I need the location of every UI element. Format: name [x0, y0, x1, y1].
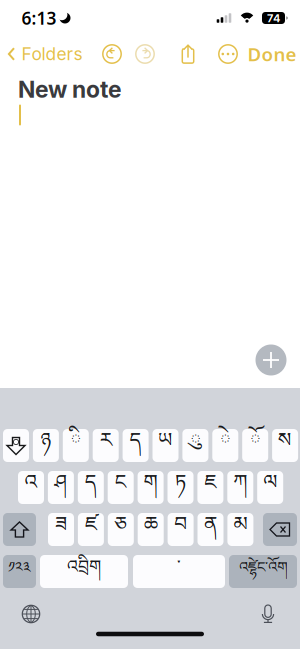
staticText: ཤ	[54, 459, 67, 516]
staticText: ོ	[250, 417, 261, 474]
button[interactable]: མ	[227, 513, 253, 546]
staticText: ེ	[220, 417, 231, 474]
staticText: Folders	[21, 43, 82, 64]
button[interactable]: Sticker	[3, 429, 29, 462]
staticText: ཟ	[55, 501, 67, 558]
staticText: ཛ	[85, 501, 97, 558]
button[interactable]: ཟ	[48, 513, 74, 546]
staticText: ཇ	[204, 459, 216, 516]
button[interactable]: Share	[179, 43, 197, 65]
staticText: ཡ	[158, 417, 173, 474]
button[interactable]: ཛ	[78, 513, 104, 546]
staticText: འཛྷེང་འོག	[239, 551, 287, 592]
button[interactable]: ལ	[257, 471, 283, 504]
button[interactable]: Folders	[14, 41, 76, 67]
button[interactable]: ན	[197, 513, 223, 546]
staticText: 74	[267, 12, 280, 25]
button[interactable]: ི	[63, 429, 89, 462]
button[interactable]: Delete	[263, 513, 297, 546]
button[interactable]: ཉ	[33, 429, 59, 462]
staticText: ུ	[190, 417, 201, 474]
staticText: New note	[18, 76, 122, 103]
button[interactable]: Dictate	[260, 604, 275, 624]
staticText: ད	[130, 417, 142, 474]
button[interactable]: བ	[168, 513, 194, 546]
staticText: ད	[85, 459, 97, 516]
button[interactable]: ག	[138, 471, 164, 504]
button[interactable]: ༡༢༣	[3, 555, 36, 588]
button[interactable]: འབྲིག	[40, 555, 128, 588]
staticText: ཀ	[233, 459, 247, 516]
staticText: ར	[100, 417, 112, 474]
staticText: འ	[24, 459, 37, 516]
button[interactable]: འཛྷེང་འོག	[229, 555, 297, 588]
button[interactable]: More	[217, 43, 239, 65]
staticText: ཏ	[175, 459, 186, 516]
button[interactable]: Next keyboard	[21, 604, 41, 624]
button[interactable]: ཏ	[167, 471, 193, 504]
button[interactable]: Add attachment	[255, 344, 286, 375]
staticText: ན	[204, 501, 217, 558]
staticText: ཉ	[40, 417, 51, 474]
button[interactable]: ་	[133, 555, 225, 588]
staticText: ང	[115, 459, 127, 516]
button[interactable]: ཆ	[138, 513, 164, 546]
button[interactable]: ང	[108, 471, 134, 504]
button[interactable]: ཡ	[152, 429, 178, 462]
button[interactable]: ད	[78, 471, 104, 504]
button[interactable]: Done	[251, 41, 293, 67]
staticText: ལ	[263, 459, 277, 516]
button[interactable]: Shift	[3, 513, 36, 546]
button[interactable]: ོ	[242, 429, 268, 462]
button[interactable]: འ	[18, 471, 44, 504]
button[interactable]: Redo	[134, 43, 156, 65]
button[interactable]: ར	[93, 429, 119, 462]
button[interactable]: Undo	[101, 43, 123, 65]
staticText: ས	[278, 417, 292, 474]
button[interactable]: ུ	[182, 429, 208, 462]
staticText: ཆ	[144, 501, 158, 558]
button[interactable]: ཤ	[48, 471, 74, 504]
staticText: མ	[233, 501, 247, 558]
button[interactable]: ད	[123, 429, 149, 462]
staticText: 6:13	[21, 6, 56, 29]
staticText: Done	[247, 42, 296, 66]
staticText: ཅ	[114, 501, 127, 558]
staticText: བ	[174, 501, 187, 558]
staticText: ༡༢༣	[8, 551, 31, 592]
staticText: ་	[177, 547, 181, 596]
staticText: འབྲིག	[67, 547, 101, 596]
staticText: ི	[70, 417, 81, 474]
button[interactable]: ཅ	[108, 513, 134, 546]
button[interactable]: ེ	[212, 429, 238, 462]
button[interactable]: ཇ	[197, 471, 223, 504]
button[interactable]: ས	[272, 429, 298, 462]
staticText: ག	[144, 459, 158, 516]
button[interactable]: ཀ	[227, 471, 253, 504]
